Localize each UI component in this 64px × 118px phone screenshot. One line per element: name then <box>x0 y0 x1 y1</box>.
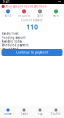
staticText: 110 <box>26 23 38 31</box>
staticText: Send <box>4 14 11 17</box>
button[interactable]: Send <box>0 9 16 17</box>
button[interactable]: Continue to payment <box>1 49 62 56</box>
staticText: Home <box>4 112 12 116</box>
staticText: Last updated <box>1 47 18 51</box>
staticText: Cards <box>20 112 27 116</box>
button[interactable]: Request <box>16 9 32 17</box>
button[interactable]: Profile <box>48 108 64 116</box>
button[interactable]: Home <box>0 108 16 116</box>
staticText: ••• <box>58 0 61 4</box>
button[interactable]: Split <box>32 9 48 17</box>
button[interactable]: More <box>48 9 64 17</box>
staticText: Profile <box>51 112 61 116</box>
staticText: Pending amount <box>1 36 25 39</box>
staticText: 9:41 <box>3 0 10 4</box>
staticText: Transfer limit <box>1 32 18 35</box>
staticText: Available today <box>1 40 21 43</box>
staticText: Continue to payment <box>16 51 48 54</box>
staticText: Current balance <box>21 19 43 22</box>
button[interactable]: Cards <box>16 108 32 116</box>
button[interactable]: Pay <box>32 108 48 116</box>
staticText: Pay <box>38 112 42 116</box>
staticText: More <box>52 14 59 17</box>
staticText: Request <box>18 14 30 17</box>
staticText: Split <box>37 14 43 17</box>
staticText: Scheduled payment <box>1 43 28 47</box>
staticText: Your account needs attention <box>6 5 47 8</box>
